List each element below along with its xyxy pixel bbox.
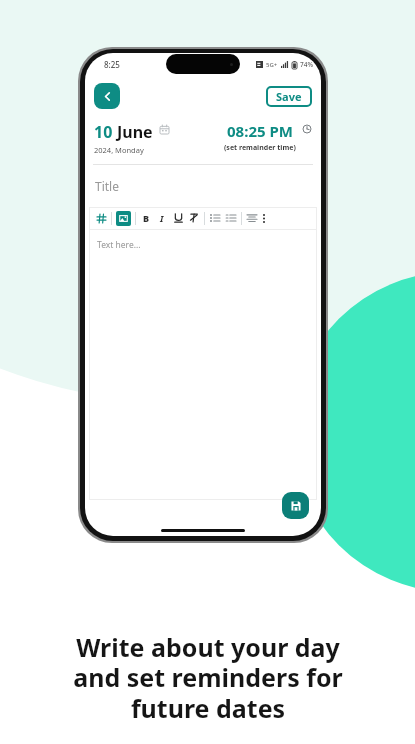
button[interactable]: Text here... xyxy=(89,230,317,500)
button[interactable]: Bold xyxy=(138,207,154,229)
staticText: Text here... xyxy=(97,239,141,251)
staticText: Write about your day and set reminders f… xyxy=(73,630,343,726)
staticText: I xyxy=(160,212,164,224)
button[interactable]: Strikethrough xyxy=(186,207,202,229)
staticText: 8:25 xyxy=(104,59,120,70)
staticText: (set remainder time) xyxy=(224,143,296,153)
button[interactable]: Insert image xyxy=(116,211,131,226)
staticText: Save xyxy=(276,89,302,104)
button[interactable]: Bulleted list xyxy=(207,207,223,229)
button[interactable]: More options xyxy=(260,207,268,229)
staticText: 08:25 PM xyxy=(227,121,293,141)
button[interactable]: Italic xyxy=(154,207,170,229)
staticText: B xyxy=(143,212,150,224)
button[interactable]: Save xyxy=(266,86,312,107)
staticText: June xyxy=(117,121,153,143)
staticText: 5G+ xyxy=(266,61,278,69)
button[interactable]: Underline xyxy=(170,207,186,229)
button[interactable]: Align xyxy=(244,207,260,229)
staticText: 2024, Monday xyxy=(94,145,144,155)
staticText: 74% xyxy=(300,60,313,69)
button[interactable]: 08:25 PM xyxy=(224,121,312,153)
button[interactable]: Back xyxy=(94,83,120,109)
button[interactable]: Heading xyxy=(93,207,109,229)
button[interactable]: Save note xyxy=(282,492,309,519)
button[interactable]: Title xyxy=(95,178,119,194)
button[interactable]: 10 xyxy=(94,121,169,155)
button[interactable]: Numbered list xyxy=(223,207,239,229)
staticText: 10 xyxy=(94,121,117,143)
